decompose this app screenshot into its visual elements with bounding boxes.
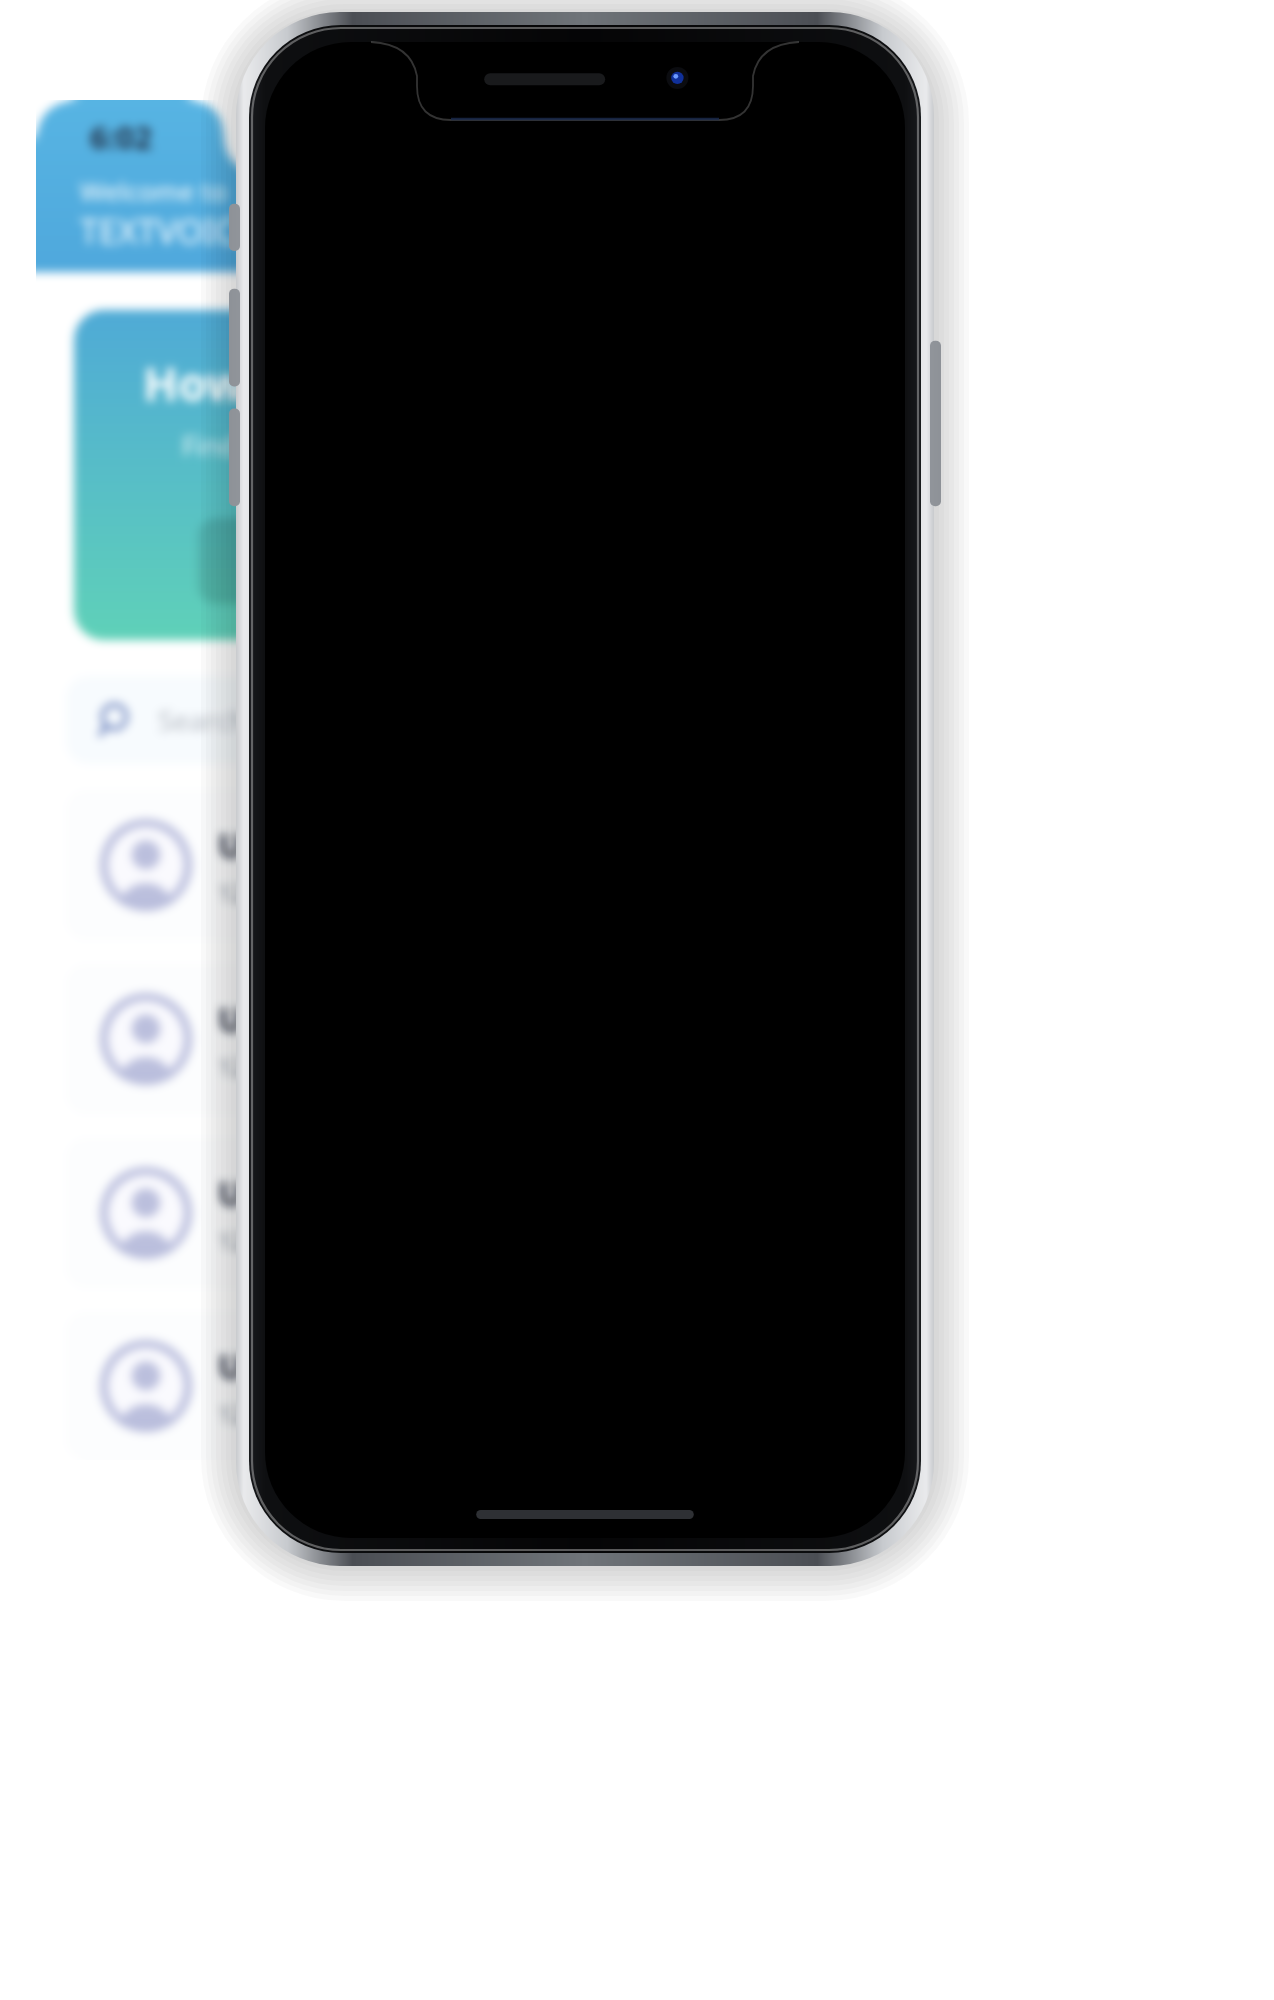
staticText: 1234567890 — [218, 1224, 356, 1257]
staticText: Unknown — [218, 1343, 381, 1389]
staticText: Search... — [158, 701, 270, 739]
staticText: Unknown — [218, 996, 381, 1042]
staticText: 6:02 — [90, 116, 152, 158]
staticText: 1234567890 — [218, 876, 356, 909]
button[interactable]: Unknown — [66, 964, 476, 1114]
staticText: Unknown — [218, 1170, 381, 1216]
staticText: TEXTVOICE — [80, 208, 256, 254]
button[interactable]: Let's go — [198, 518, 448, 604]
staticText: 1234567890 — [218, 1397, 356, 1430]
staticText: How to use — [143, 352, 399, 415]
staticText: Unknown — [218, 822, 381, 868]
button[interactable]: Unknown — [66, 790, 476, 940]
staticText: Find out more — [182, 427, 361, 464]
button[interactable]: Unknown — [66, 1312, 476, 1460]
button[interactable]: Search... — [66, 676, 476, 764]
staticText: Welcome to — [80, 173, 227, 208]
button[interactable]: Unknown — [66, 1138, 476, 1288]
staticText: 1234567890 — [218, 1050, 356, 1083]
button[interactable]: How to use — [74, 310, 468, 640]
